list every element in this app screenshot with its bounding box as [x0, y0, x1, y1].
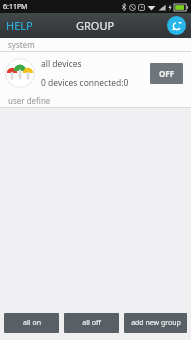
staticText: GROUP [76, 18, 115, 33]
button[interactable]: all off [64, 313, 119, 333]
button[interactable]: add new group [124, 313, 187, 333]
staticText: user define [8, 95, 51, 106]
button[interactable]: HELP [0, 13, 39, 38]
staticText: 6:11PM [3, 2, 28, 12]
staticText: all off [82, 318, 101, 328]
button[interactable]: OFF [150, 63, 183, 84]
button[interactable]: all on [4, 313, 59, 333]
staticText: OFF [159, 68, 175, 79]
staticText: all on [23, 318, 41, 328]
staticText: HELP [6, 18, 33, 33]
staticText: add new group [131, 318, 181, 328]
staticText: system [8, 39, 35, 50]
button[interactable]: Refresh [167, 16, 186, 35]
staticText: all devices [41, 58, 82, 70]
button[interactable]: all devices [0, 52, 191, 94]
staticText: 0 devices connected:0 [41, 77, 129, 89]
